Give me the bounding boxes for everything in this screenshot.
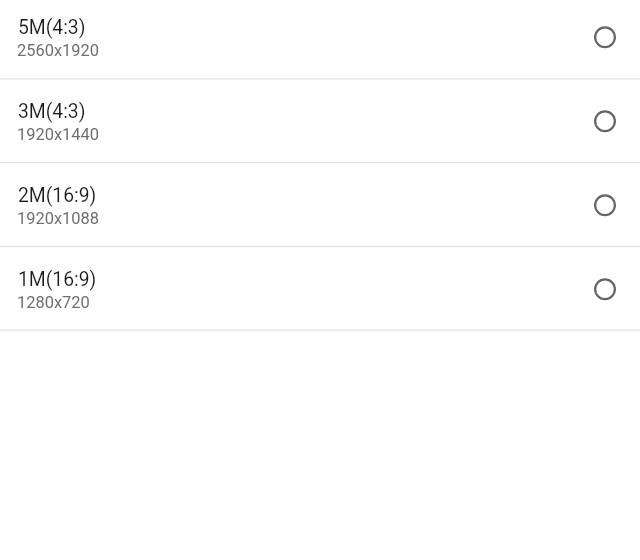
staticText: 2M(16:9)	[18, 184, 97, 207]
other: Select 3M(4:3)	[593, 108, 617, 132]
other: Select 5M(4:3)	[593, 24, 617, 48]
staticText: 1M(16:9)	[18, 268, 97, 291]
staticText: 1280x720	[17, 293, 90, 312]
staticText: 1920x1440	[17, 125, 100, 144]
other: Select 1M(16:9)	[593, 276, 617, 300]
staticText: 3M(4:3)	[18, 100, 86, 123]
button[interactable]: 1M(16:9)	[0, 246, 640, 330]
button[interactable]: 3M(4:3)	[0, 78, 640, 162]
staticText: 1920x1088	[17, 209, 100, 228]
button[interactable]: 5M(4:3)	[0, 0, 640, 78]
button[interactable]: 2M(16:9)	[0, 162, 640, 246]
staticText: 2560x1920	[17, 41, 100, 60]
other: Select 2M(16:9)	[593, 192, 617, 216]
staticText: 5M(4:3)	[18, 16, 86, 39]
